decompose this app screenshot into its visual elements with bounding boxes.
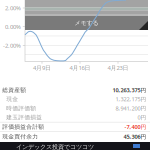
staticText: 4月16日: [69, 64, 90, 72]
staticText: インデックス投資でコツコツ: [16, 143, 94, 150]
staticText: 時価評価額: [6, 105, 36, 112]
staticText: 総資産額: [2, 86, 26, 94]
staticText: 現金買付余力: [2, 133, 38, 140]
staticText: 評価損益合計額: [2, 123, 44, 130]
staticText: -7,400円: [124, 123, 146, 131]
staticText: 45,306円: [123, 133, 146, 140]
staticText: 0円: [137, 113, 146, 121]
staticText: 10,263,375円: [112, 86, 146, 94]
staticText: 4月9日: [33, 64, 51, 72]
staticText: 建玉評価損益: [6, 114, 42, 121]
staticText: -2.00%: [3, 41, 21, 49]
staticText: 現金: [6, 95, 18, 103]
staticText: 2.00%: [5, 4, 21, 12]
staticText: メモする: [74, 19, 98, 27]
staticText: 8,941,200円: [115, 104, 146, 112]
staticText: 4月23日: [107, 64, 128, 72]
staticText: 0.00%: [5, 23, 21, 31]
staticText: 1,322,175円: [115, 95, 146, 103]
button[interactable]: 広告: [25, 0, 148, 30]
button[interactable]: インデックス投資でコツコツ: [0, 142, 150, 150]
